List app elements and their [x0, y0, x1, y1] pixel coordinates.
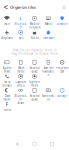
button[interactable]: Home: [29, 138, 40, 150]
button[interactable]: Scan for navigation: [41, 60, 55, 73]
staticText: Airplane: [1, 36, 13, 40]
staticText: Storage: [57, 94, 67, 98]
staticText: Scan for navigation: [42, 66, 55, 77]
button[interactable]: Back: [11, 138, 22, 150]
staticText: Work mode: [17, 66, 25, 73]
button[interactable]: Second space: [28, 88, 41, 101]
staticText: Projector cast: [56, 66, 69, 73]
button[interactable]: Projector cast: [55, 60, 69, 73]
button[interactable]: Dark mode: [0, 88, 14, 101]
button[interactable]: Location: [55, 16, 69, 29]
staticText: Lighten mode: [29, 80, 40, 87]
staticText: Bluetooth: [14, 22, 27, 29]
button[interactable]: Recents: [46, 138, 58, 150]
button[interactable]: Lighten mode: [28, 74, 41, 87]
button[interactable]: Mobile network: [28, 16, 41, 29]
button[interactable]: Silent: [28, 30, 41, 43]
staticText: Location: [57, 22, 68, 26]
staticText: Screenshot: [42, 94, 55, 101]
button[interactable]: Screenshot: [41, 88, 55, 101]
staticText: Audio Share: [2, 66, 11, 73]
staticText: Bluetooth share: [14, 94, 27, 105]
staticText: Fonts: [3, 108, 10, 112]
button[interactable]: Data saver: [41, 30, 55, 43]
button[interactable]: Wallet: [41, 16, 55, 29]
staticText: F: [5, 101, 8, 108]
staticText: Second space: [29, 94, 39, 101]
button[interactable]: F: [0, 102, 14, 115]
staticText: Mobile network: [29, 22, 40, 29]
button[interactable]: Bluetooth: [14, 16, 28, 29]
staticText: Organize tiles: [10, 4, 36, 10]
staticText: Data saver: [42, 36, 54, 40]
button[interactable]: Capture video: [14, 74, 28, 87]
button[interactable]: More options: [60, 2, 68, 12]
staticText: Dark mode: [3, 94, 11, 101]
staticText: Mi vc storage: [2, 80, 12, 87]
button[interactable]: Audio Share: [0, 60, 14, 73]
staticText: Drag tiles to rearrange them, or drag th…: [11, 48, 58, 56]
staticText: Wallet: [44, 22, 52, 26]
button[interactable]: Sync: [14, 30, 28, 43]
staticText: Sync: [18, 36, 23, 40]
button[interactable]: Back: [0, 2, 11, 12]
button[interactable]: Wi-Fi: [0, 16, 14, 29]
staticText: Silent: [30, 36, 38, 40]
staticText: Wi-Fi: [4, 22, 10, 26]
button[interactable]: Mi vc storage: [0, 74, 14, 87]
button[interactable]: Work mode: [14, 60, 28, 73]
staticText: Second space: [29, 66, 39, 73]
button[interactable]: Bluetooth share: [14, 88, 28, 101]
staticText: Capture video: [15, 80, 26, 87]
button[interactable]: Airplane: [0, 30, 14, 43]
button[interactable]: Organize tiles: [9, 3, 37, 11]
button[interactable]: Second space: [28, 60, 41, 73]
button[interactable]: Storage: [55, 88, 69, 101]
